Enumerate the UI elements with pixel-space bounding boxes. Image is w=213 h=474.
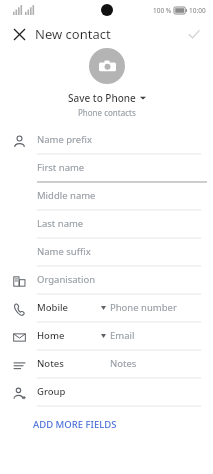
- button[interactable]: Add photo: [89, 48, 125, 84]
- staticText: Name prefix: [37, 133, 92, 146]
- button[interactable]: Middle name: [0, 183, 213, 211]
- staticText: Last name: [37, 217, 84, 230]
- staticText: 10:00: [189, 6, 206, 15]
- staticText: Phone contacts: [78, 107, 136, 118]
- button[interactable]: Organisation: [0, 267, 213, 295]
- button[interactable]: Notes: [0, 351, 213, 379]
- staticText: Notes: [37, 357, 64, 370]
- staticText: Group: [37, 385, 66, 398]
- button[interactable]: Group: [0, 379, 213, 407]
- staticText: Phone number: [110, 301, 177, 314]
- button[interactable]: Home: [0, 323, 213, 351]
- button[interactable]: Mobile: [0, 295, 213, 323]
- button[interactable]: Save: [183, 23, 205, 45]
- staticText: Notes: [110, 357, 137, 370]
- button[interactable]: ADD MORE FIELDS: [0, 413, 213, 435]
- staticText: 100 %: [153, 6, 172, 15]
- staticText: New contact: [35, 25, 111, 43]
- button[interactable]: Name prefix: [0, 127, 213, 155]
- button[interactable]: Close: [8, 23, 30, 45]
- staticText: First name: [37, 161, 85, 174]
- staticText: Mobile: [37, 301, 68, 314]
- staticText: Name suffix: [37, 245, 91, 258]
- staticText: ADD MORE FIELDS: [33, 418, 117, 431]
- button[interactable]: Name suffix: [0, 239, 213, 267]
- button[interactable]: Save to Phone: [68, 91, 146, 105]
- button[interactable]: First name: [0, 155, 213, 183]
- staticText: Middle name: [37, 189, 96, 202]
- button[interactable]: Last name: [0, 211, 213, 239]
- staticText: Organisation: [37, 273, 96, 286]
- staticText: Save to Phone: [68, 91, 136, 105]
- staticText: Home: [37, 329, 65, 342]
- staticText: Email: [110, 329, 135, 342]
